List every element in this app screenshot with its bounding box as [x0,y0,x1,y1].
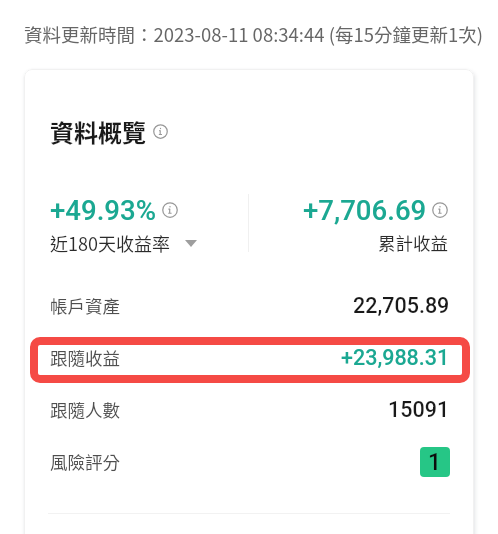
button[interactable]: 跟隨人數 [24,383,474,435]
button[interactable]: 資料概覽 [50,114,168,149]
staticText: 跟隨人數 [50,397,120,422]
other: Info [153,124,168,139]
staticText: 風險評分 [50,449,120,474]
staticText: +23,988.31 [341,345,450,370]
button[interactable]: 近180天收益率 [50,230,197,256]
staticText: +7,706.69 [303,194,427,226]
staticText: 資料概覽 [50,114,146,149]
staticText: 15091 [388,397,450,422]
other: Info [432,202,448,218]
other: Info [162,202,178,218]
staticText: +49.93% [50,194,157,226]
button[interactable]: 跟隨收益 [24,331,474,383]
staticText: 1 [428,449,442,476]
staticText: 近180天收益率 [50,230,170,256]
button[interactable]: 帳戶資產 [24,279,474,331]
staticText: 帳戶資產 [50,293,120,318]
staticText: 跟隨收益 [50,345,120,370]
button[interactable]: 風險評分 [24,435,474,487]
staticText: 累計收益 [378,230,448,255]
staticText: 22,705.89 [353,293,450,318]
staticText: 資料更新時間：2023-08-11 08:34:44 (每15分鐘更新1次) [24,21,483,48]
